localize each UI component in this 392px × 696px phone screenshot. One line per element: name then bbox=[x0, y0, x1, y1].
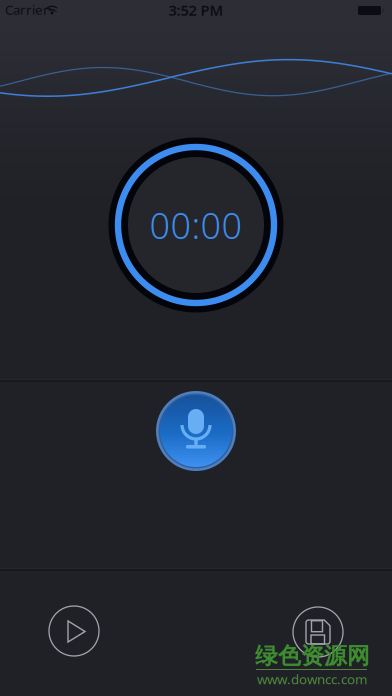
staticText: 3:52 PM bbox=[168, 0, 223, 20]
staticText: 00:00 bbox=[149, 201, 242, 249]
button[interactable]: Record bbox=[156, 391, 236, 471]
staticText: 绿色资源网 bbox=[255, 642, 370, 670]
button[interactable]: Save bbox=[293, 607, 343, 657]
staticText: www.downcc.com bbox=[257, 670, 367, 688]
staticText: Carrier bbox=[5, 1, 49, 18]
button[interactable]: Play bbox=[49, 606, 99, 656]
